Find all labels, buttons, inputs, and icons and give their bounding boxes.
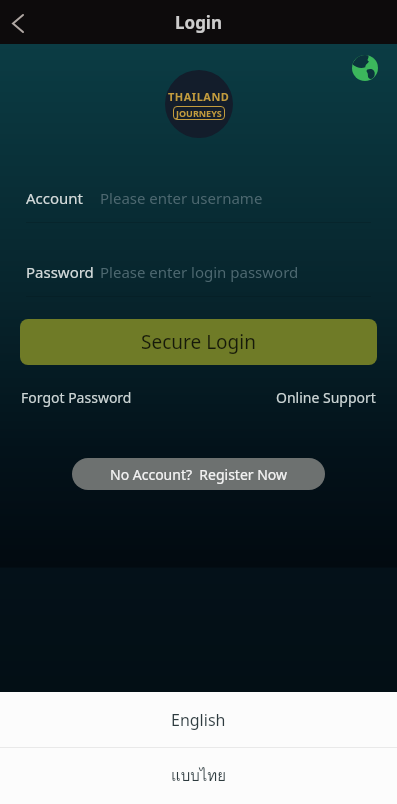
button[interactable]: [0, 2, 40, 42]
staticText: Password: [26, 262, 100, 282]
button[interactable]: แบบไทย: [0, 748, 397, 804]
button[interactable]: Secure Login: [20, 319, 377, 365]
staticText: Please enter username: [100, 188, 263, 208]
staticText: แบบไทย: [171, 764, 226, 788]
button[interactable]: [352, 55, 378, 81]
button[interactable]: Forgot Password: [21, 388, 132, 407]
staticText: Login: [175, 11, 223, 34]
button[interactable]: No Account? Register Now: [72, 458, 325, 490]
staticText: Secure Login: [141, 329, 256, 355]
staticText: No Account? Register Now: [110, 465, 288, 484]
button[interactable]: Password: [26, 262, 371, 282]
staticText: English: [171, 709, 226, 731]
staticText: Account: [26, 188, 100, 208]
staticText: THAILAND: [168, 89, 230, 104]
button[interactable]: Online Support: [276, 388, 376, 407]
button[interactable]: Account: [26, 188, 371, 208]
staticText: Please enter login password: [100, 262, 299, 282]
button[interactable]: English: [0, 692, 397, 747]
staticText: JOURNEYS: [176, 107, 222, 119]
